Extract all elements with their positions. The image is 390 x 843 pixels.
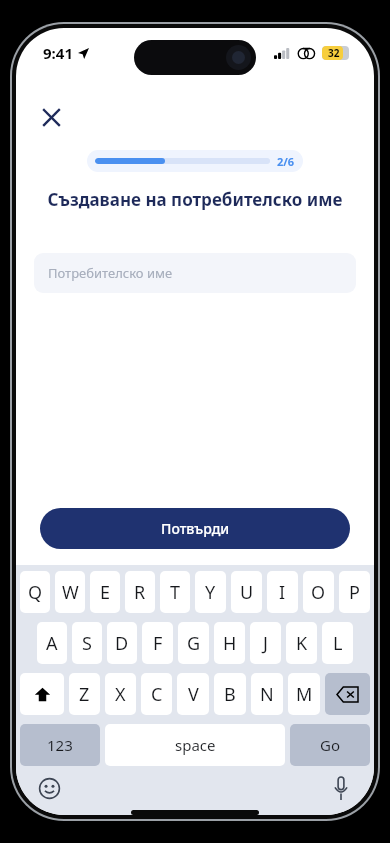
button[interactable]: V xyxy=(177,673,209,715)
staticText: B xyxy=(224,682,236,707)
staticText: F xyxy=(153,631,163,656)
staticText: 32 xyxy=(328,46,340,60)
staticText: D xyxy=(115,631,129,656)
staticText: 123 xyxy=(47,735,73,755)
button[interactable]: S xyxy=(72,622,102,664)
button[interactable]: F xyxy=(142,622,173,664)
button[interactable]: R xyxy=(125,571,155,613)
button[interactable]: W xyxy=(55,571,85,613)
staticText: P xyxy=(349,580,360,605)
button[interactable]: P xyxy=(339,571,370,613)
button[interactable]: Потребителско име xyxy=(34,253,356,293)
button[interactable]: L xyxy=(322,622,353,664)
button[interactable]: Emoji xyxy=(32,771,66,805)
staticText: G xyxy=(187,631,201,656)
button[interactable]: M xyxy=(288,673,320,715)
staticText: N xyxy=(260,682,274,707)
staticText: X xyxy=(115,682,126,707)
button[interactable]: Z xyxy=(69,673,100,715)
button[interactable]: X xyxy=(105,673,136,715)
button[interactable]: N xyxy=(251,673,283,715)
staticText: W xyxy=(62,580,79,605)
staticText: 2/6 xyxy=(277,154,295,169)
staticText: V xyxy=(188,682,199,707)
button[interactable]: G xyxy=(178,622,209,664)
button[interactable]: K xyxy=(286,622,317,664)
staticText: C xyxy=(151,682,163,707)
button[interactable]: B xyxy=(214,673,246,715)
button[interactable]: U xyxy=(231,571,262,613)
button[interactable]: Потвърди xyxy=(40,508,350,549)
button[interactable]: A xyxy=(37,622,67,664)
button[interactable]: J xyxy=(250,622,281,664)
staticText: A xyxy=(46,631,58,656)
staticText: E xyxy=(100,580,111,605)
button[interactable]: E xyxy=(90,571,120,613)
staticText: U xyxy=(240,580,254,605)
staticText: S xyxy=(82,631,92,656)
button[interactable]: O xyxy=(303,571,334,613)
staticText: R xyxy=(134,580,146,605)
button[interactable]: Y xyxy=(195,571,226,613)
button[interactable]: 123 xyxy=(20,724,100,766)
button[interactable]: Voice input xyxy=(324,771,358,805)
staticText: Go xyxy=(320,735,340,755)
button[interactable]: T xyxy=(160,571,190,613)
staticText: Потвърди xyxy=(161,519,230,538)
staticText: Q xyxy=(28,580,43,605)
staticText: Y xyxy=(205,580,216,605)
staticText: M xyxy=(296,682,313,707)
button[interactable]: I xyxy=(267,571,298,613)
button[interactable]: H xyxy=(214,622,245,664)
button[interactable]: Q xyxy=(20,571,50,613)
staticText: 9:41 xyxy=(43,43,73,63)
staticText: Потребителско име xyxy=(48,264,173,282)
staticText: O xyxy=(311,580,326,605)
button[interactable]: Go xyxy=(290,724,370,766)
button[interactable]: Close xyxy=(30,96,72,138)
button[interactable]: Shift xyxy=(20,673,64,715)
staticText: K xyxy=(296,631,308,656)
staticText: Z xyxy=(79,682,90,707)
button[interactable]: C xyxy=(141,673,172,715)
staticText: I xyxy=(279,580,286,605)
staticText: Създаване на потребителско име xyxy=(36,188,354,211)
button[interactable]: Backspace xyxy=(325,673,370,715)
staticText: H xyxy=(223,631,237,656)
button[interactable]: space xyxy=(105,724,285,766)
staticText: L xyxy=(333,631,343,656)
staticText: T xyxy=(170,580,181,605)
staticText: J xyxy=(263,631,268,656)
staticText: space xyxy=(175,735,216,755)
button[interactable]: D xyxy=(107,622,137,664)
